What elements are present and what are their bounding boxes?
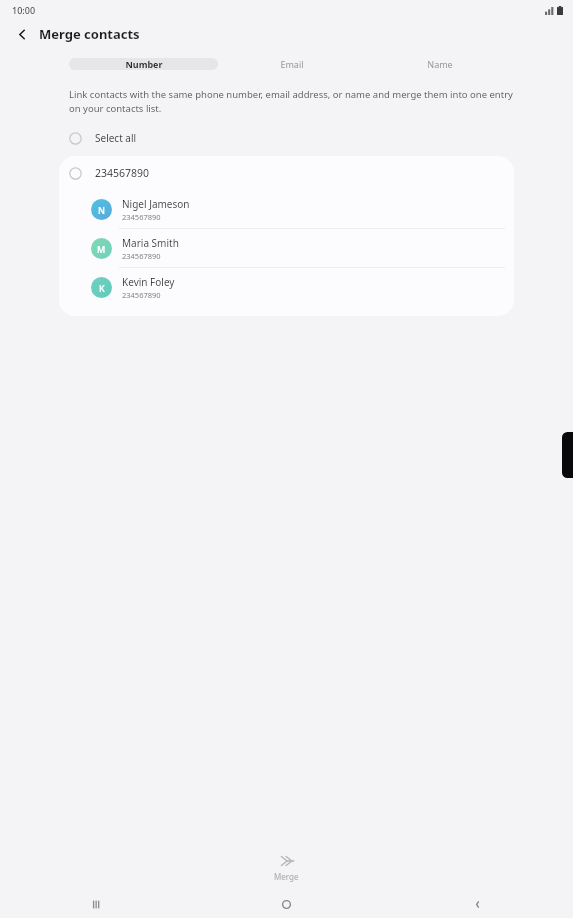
staticText: Merge contacts xyxy=(39,25,140,43)
button[interactable]: K xyxy=(59,268,514,306)
button[interactable]: Merge xyxy=(0,846,573,890)
staticText: Merge xyxy=(274,871,299,882)
button[interactable]: M xyxy=(59,229,514,267)
staticText: Select all xyxy=(95,131,137,145)
staticText: 234567890 xyxy=(122,251,161,261)
staticText: 10:00 xyxy=(12,4,36,16)
staticText: Nigel Jameson xyxy=(122,197,190,211)
button[interactable]: Home xyxy=(191,890,382,918)
staticText: Number xyxy=(125,58,163,70)
button[interactable]: Back xyxy=(10,22,34,46)
button[interactable]: Name xyxy=(366,58,514,70)
staticText: N xyxy=(98,204,105,216)
staticText: 234567890 xyxy=(122,212,161,222)
staticText: Email xyxy=(280,58,304,70)
staticText: Maria Smith xyxy=(122,236,179,250)
staticText: 234567890 xyxy=(122,290,161,300)
button[interactable]: Back xyxy=(382,890,573,918)
button[interactable]: Edge panel handle xyxy=(562,432,573,478)
button[interactable]: Email xyxy=(218,58,366,70)
staticText: K xyxy=(99,282,105,294)
staticText: Name xyxy=(427,58,453,70)
button[interactable]: Number xyxy=(69,58,218,70)
staticText: M xyxy=(97,243,106,255)
staticText: Kevin Foley xyxy=(122,275,175,289)
staticText: Link contacts with the same phone number… xyxy=(69,88,513,115)
button[interactable]: Recents xyxy=(0,890,191,918)
button[interactable]: Select all xyxy=(59,126,514,150)
button[interactable]: 234567890 xyxy=(59,156,514,190)
button[interactable]: N xyxy=(59,190,514,228)
staticText: 234567890 xyxy=(95,166,150,180)
